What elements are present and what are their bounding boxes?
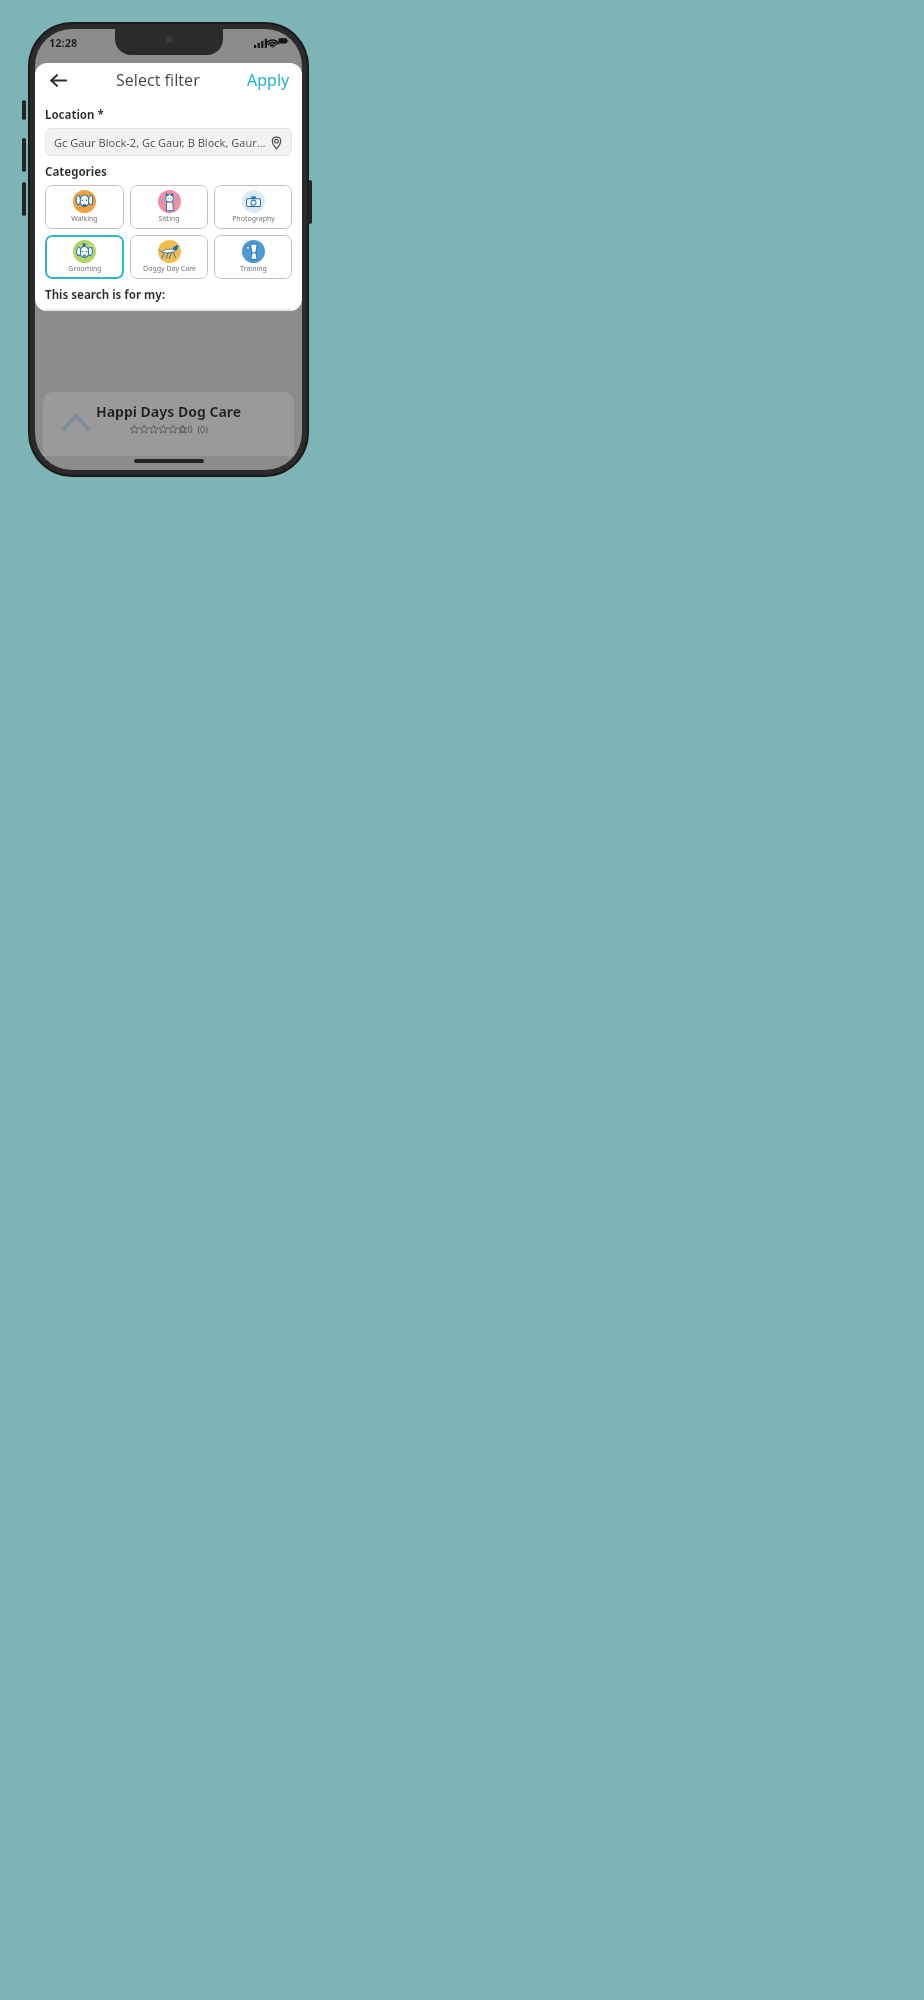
button[interactable]: Doggy Day Care — [130, 235, 208, 279]
staticText: Happi Days Dog Care — [96, 402, 242, 421]
button[interactable]: Sitting — [130, 185, 208, 229]
staticText: Walking — [71, 214, 98, 224]
staticText: 0.0 (0) — [180, 423, 208, 435]
button[interactable]: Grooming — [45, 235, 124, 279]
staticText: Categories — [45, 164, 107, 180]
button[interactable]: Training — [214, 235, 292, 279]
staticText: Photography — [232, 214, 275, 224]
staticText: This search is for my: — [45, 287, 166, 303]
staticText: BookYourPet — [122, 74, 214, 94]
staticText: Training — [240, 264, 267, 274]
staticText: Location * — [45, 107, 104, 123]
staticText: Doggy Day Care — [143, 264, 196, 274]
staticText: 12:28 — [49, 35, 78, 50]
staticText: Sitting — [158, 214, 180, 224]
staticText: Apply — [247, 69, 290, 91]
staticText: Select filter — [116, 69, 200, 91]
button[interactable]: Gc Gaur Block-2, Gc Gaur, B Block, Gaur … — [45, 128, 292, 156]
button[interactable]: Apply — [245, 69, 292, 91]
button[interactable]: Walking — [45, 185, 124, 229]
staticText: Gc Gaur Block-2, Gc Gaur, B Block, Gaur … — [54, 135, 267, 150]
button[interactable]: Back — [45, 67, 71, 93]
button[interactable]: Photography — [214, 185, 292, 229]
staticText: Grooming — [68, 264, 102, 274]
